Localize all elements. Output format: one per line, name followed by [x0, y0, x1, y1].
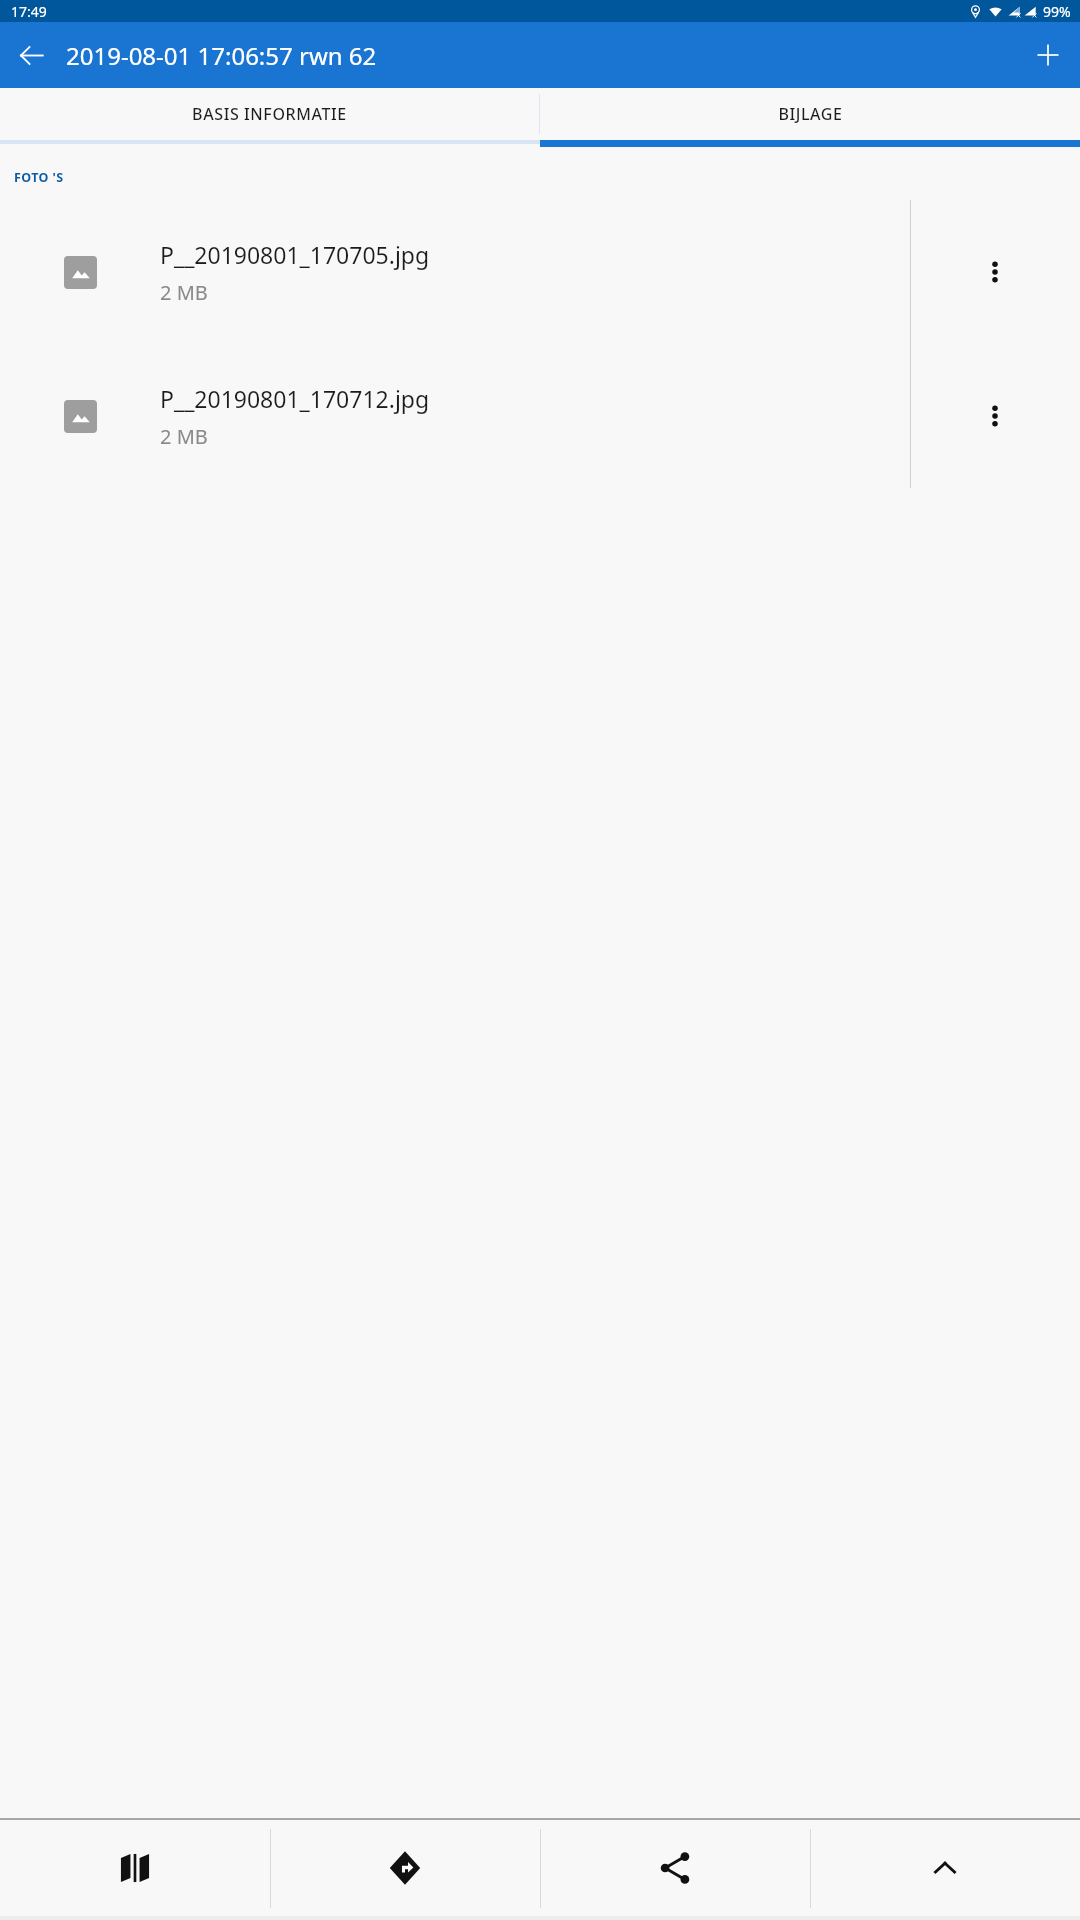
staticText: BASIS INFORMATIE — [192, 103, 347, 125]
button[interactable]: Share — [540, 1820, 810, 1916]
button[interactable]: P__20190801_170705.jpg — [0, 200, 1080, 344]
other: Expand — [928, 1851, 962, 1885]
other: Map — [116, 1849, 154, 1887]
staticText: 2 MB — [160, 423, 208, 450]
button[interactable]: More options — [967, 244, 1023, 300]
staticText: P__20190801_170712.jpg — [160, 383, 430, 414]
staticText: FOTO 'S — [14, 169, 64, 186]
button[interactable]: Directions — [270, 1820, 540, 1916]
staticText: 2 MB — [160, 279, 208, 306]
other: Directions — [386, 1849, 424, 1887]
button[interactable]: More options — [967, 388, 1023, 444]
button[interactable]: BIJLAGE — [540, 88, 1080, 140]
button[interactable]: Map — [0, 1820, 270, 1916]
staticText: 2019-08-01 17:06:57 rwn 62 — [66, 39, 377, 72]
button[interactable]: Back — [7, 31, 55, 79]
staticText: 17:49 — [11, 2, 47, 21]
staticText: P__20190801_170705.jpg — [160, 239, 430, 270]
staticText: BIJLAGE — [778, 103, 843, 125]
button[interactable]: Add — [1024, 31, 1072, 79]
button[interactable]: BASIS INFORMATIE — [0, 88, 539, 140]
staticText: 99% — [1043, 2, 1071, 21]
button[interactable]: P__20190801_170712.jpg — [0, 344, 1080, 488]
other: Share — [656, 1849, 694, 1887]
button[interactable]: Expand — [810, 1820, 1080, 1916]
